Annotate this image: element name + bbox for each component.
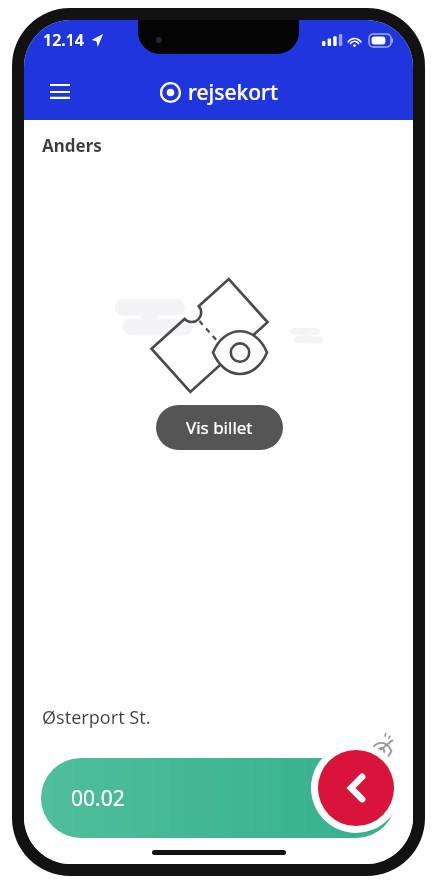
staticText: Anders	[42, 134, 102, 157]
staticText: Østerport St.	[42, 705, 151, 730]
button[interactable]: Vis billet	[156, 405, 283, 450]
button[interactable]: Menu	[38, 70, 82, 114]
staticText: Vis billet	[186, 416, 253, 439]
staticText: 00.02	[71, 784, 125, 813]
button[interactable]: Hide	[369, 736, 395, 762]
button[interactable]: 00.02	[41, 758, 396, 838]
button[interactable]: Check ud	[311, 743, 401, 833]
staticText: rejsekort	[188, 78, 278, 107]
staticText: 12.14	[43, 29, 85, 51]
